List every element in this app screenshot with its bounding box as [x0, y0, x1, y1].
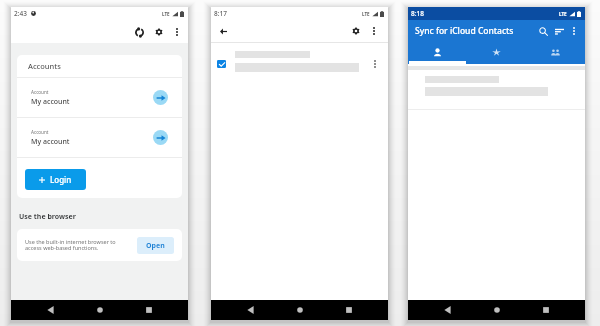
button[interactable]: Recents — [138, 300, 160, 320]
button[interactable]: Open account — [153, 130, 168, 145]
staticText: LTE — [559, 11, 567, 17]
button[interactable]: Home — [89, 300, 111, 320]
button[interactable]: Account — [17, 78, 182, 117]
staticText: Use the built-in internet browser to acc… — [25, 238, 137, 252]
staticText: Login — [50, 174, 72, 185]
button[interactable]: Contacts — [408, 42, 467, 64]
staticText: Open — [146, 241, 165, 251]
button[interactable]: Sync — [130, 23, 148, 41]
button[interactable]: Open — [137, 237, 174, 254]
staticText: Accounts — [28, 61, 61, 71]
staticText: 8:17 — [214, 9, 227, 18]
button[interactable]: Settings — [347, 22, 365, 40]
button[interactable]: Back — [39, 300, 61, 320]
button[interactable]: Back — [239, 300, 261, 320]
button[interactable]: Groups — [526, 42, 585, 64]
button[interactable]: More options — [567, 24, 581, 38]
button[interactable]: Sort — [551, 23, 567, 39]
button[interactable]: More options — [368, 57, 381, 70]
button[interactable]: Recents — [535, 300, 557, 320]
button[interactable]: Search — [535, 23, 551, 39]
button[interactable]: Account — [17, 118, 182, 157]
button[interactable]: Favorites — [467, 42, 526, 64]
staticText: My account — [31, 97, 70, 107]
staticText: My account — [31, 137, 70, 147]
button[interactable]: Login — [25, 169, 86, 190]
button[interactable]: More options — [366, 23, 382, 39]
staticText: 2:43 — [14, 9, 27, 18]
button[interactable]: Home — [486, 300, 508, 320]
staticText: Use the browser — [19, 212, 76, 222]
staticText: LTE — [162, 11, 170, 17]
button[interactable]: Home — [289, 300, 311, 320]
button[interactable]: Settings — [150, 23, 168, 41]
button[interactable]: More options — [211, 48, 388, 74]
staticText: Sync for iCloud Contacts — [415, 25, 514, 37]
staticText: LTE — [362, 11, 370, 17]
button[interactable]: Open account — [153, 90, 168, 105]
button[interactable]: Back — [214, 22, 232, 40]
button[interactable]: Back — [436, 300, 458, 320]
button[interactable]: Recents — [338, 300, 360, 320]
staticText: 8:18 — [411, 9, 424, 18]
staticText: Account — [31, 129, 49, 135]
button[interactable]: More options — [169, 24, 185, 40]
staticText: Account — [31, 89, 49, 95]
